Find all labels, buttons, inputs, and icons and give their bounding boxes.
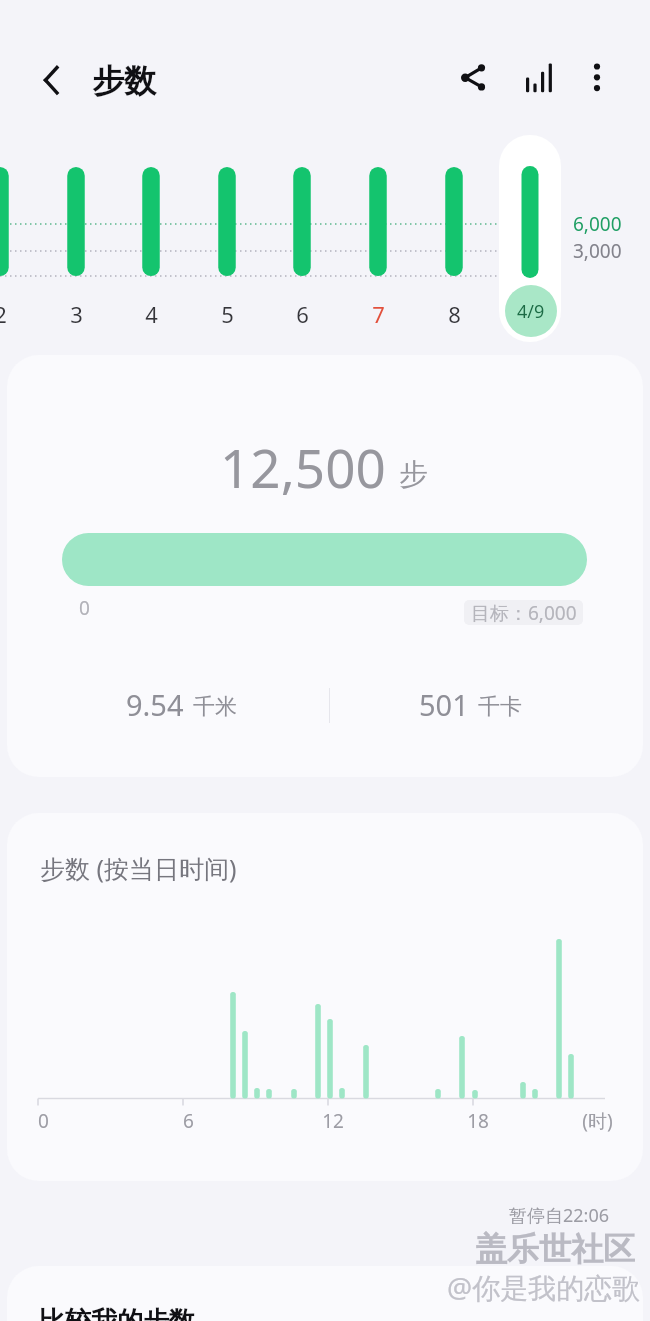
staticText: 9.54 [126, 685, 184, 724]
staticText: 3,000 [573, 238, 622, 264]
staticText: 步 [399, 456, 428, 493]
staticText: (时) [582, 1108, 613, 1134]
button[interactable]: 比较我的步数 [7, 1266, 643, 1321]
staticText: 2 [0, 299, 7, 329]
staticText: 4/9 [517, 299, 545, 324]
staticText: 7 [372, 299, 385, 329]
staticText: 501 [419, 685, 469, 724]
staticText: 12 [322, 1108, 344, 1134]
staticText: 暂停自22:06 [509, 1203, 610, 1228]
button[interactable]: Back [24, 53, 76, 105]
staticText: 步数 (按当日时间) [40, 851, 237, 885]
staticText: 盖乐世社区 [475, 1229, 635, 1269]
staticText: 6 [296, 299, 309, 329]
staticText: 0 [79, 595, 90, 621]
button[interactable]: 12,500 [7, 355, 643, 777]
button[interactable]: 4/9 selected day [499, 135, 561, 342]
staticText: 目标：6,000 [471, 600, 577, 625]
staticText: @你是我的恋歌 [447, 1268, 641, 1306]
staticText: 4 [145, 299, 158, 329]
staticText: 步数 [92, 61, 156, 101]
staticText: 6 [183, 1108, 194, 1134]
button[interactable]: Statistics [514, 53, 564, 103]
staticText: 比较我的步数 [39, 1305, 195, 1321]
staticText: 8 [448, 299, 461, 329]
staticText: 12,500 [220, 431, 386, 503]
staticText: 千米 [193, 693, 237, 721]
staticText: 5 [221, 299, 234, 329]
button[interactable]: 步数 (按当日时间) [7, 813, 643, 1181]
staticText: 千卡 [478, 693, 522, 721]
staticText: 3 [70, 299, 83, 329]
staticText: 18 [467, 1108, 489, 1134]
staticText: 0 [38, 1108, 49, 1134]
button[interactable]: Share [449, 53, 499, 103]
button[interactable]: More options [572, 53, 622, 103]
staticText: 6,000 [573, 211, 622, 237]
